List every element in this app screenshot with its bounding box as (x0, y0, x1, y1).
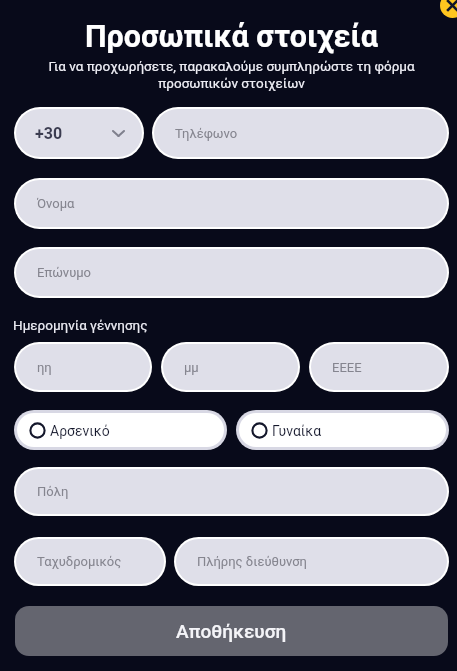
button[interactable]: Όνομα (16, 180, 447, 227)
staticText: Για να προχωρήσετε, παρακαλούμε συμπληρώ… (43, 58, 420, 91)
staticText: Προσωπικά στοιχεία (3, 19, 457, 55)
staticText: Πόλη (37, 484, 69, 499)
staticText: ΕΕΕΕ (332, 360, 362, 375)
staticText: Τηλέφωνο (175, 126, 238, 141)
button[interactable]: Ταχυδρομικός (16, 539, 164, 584)
button[interactable]: Τηλέφωνο (154, 109, 447, 157)
button[interactable]: μμ (163, 344, 298, 390)
staticText: +30 (35, 124, 63, 143)
staticText: μμ (184, 360, 199, 375)
button[interactable]: Πόλη (16, 469, 447, 514)
staticText: Ταχυδρομικός (37, 554, 122, 569)
staticText: Αποθήκευση (176, 620, 287, 642)
staticText: Επώνυμο (37, 265, 92, 280)
button[interactable]: Πλήρης διεύθυνση (176, 539, 447, 584)
button[interactable]: Επώνυμο (16, 249, 447, 296)
button[interactable]: ηη (16, 344, 150, 390)
staticText: Όνομα (37, 196, 75, 211)
button[interactable]: Close (440, 0, 457, 18)
staticText: Ημερομηνία γέννησης (13, 317, 148, 333)
button[interactable]: +30 (16, 109, 142, 157)
button[interactable]: Αρσενικό (17, 413, 224, 447)
button[interactable]: Γυναίκα (239, 413, 446, 447)
button[interactable]: ΕΕΕΕ (311, 344, 447, 390)
staticText: Αρσενικό (50, 423, 110, 439)
staticText: Πλήρης διεύθυνση (197, 554, 307, 569)
staticText: ηη (37, 360, 52, 375)
staticText: Γυναίκα (272, 423, 322, 439)
button[interactable]: Αποθήκευση (15, 606, 448, 656)
